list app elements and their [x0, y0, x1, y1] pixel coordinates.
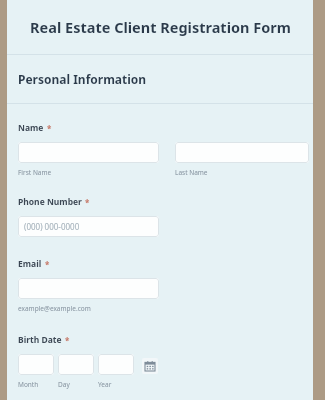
staticText: Real Estate Client Registration Form — [30, 17, 291, 37]
button[interactable] — [18, 142, 159, 163]
staticText: First Name — [18, 168, 52, 177]
staticText: * — [65, 335, 70, 346]
staticText: example@example.com — [18, 304, 91, 313]
button[interactable] — [98, 354, 134, 375]
staticText: Name — [18, 122, 44, 134]
staticText: Month — [18, 380, 39, 389]
staticText: Email — [18, 258, 42, 270]
staticText: Day — [58, 380, 70, 389]
staticText: Last Name — [175, 168, 208, 177]
button[interactable] — [58, 354, 94, 375]
staticText: Personal Information — [18, 71, 147, 87]
button[interactable] — [175, 142, 309, 163]
button[interactable] — [18, 278, 159, 299]
button[interactable] — [18, 354, 54, 375]
staticText: Phone Number — [18, 196, 82, 208]
staticText: * — [45, 259, 50, 270]
staticText: Year — [98, 380, 112, 389]
staticText: Birth Date — [18, 334, 62, 346]
staticText: * — [47, 123, 52, 134]
staticText: * — [85, 197, 90, 208]
staticText: (000) 000-0000 — [24, 221, 80, 232]
button[interactable]: Choose date — [142, 358, 158, 374]
button[interactable]: (000) 000-0000 — [18, 216, 159, 237]
